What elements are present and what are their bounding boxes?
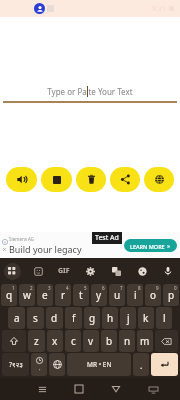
staticText: Test Ad	[95, 233, 119, 243]
staticText: 3	[48, 285, 51, 291]
staticText: 2	[30, 285, 33, 291]
staticText: t	[79, 288, 83, 302]
button[interactable]: r	[55, 284, 71, 306]
staticText: c	[71, 334, 76, 348]
button[interactable]: n	[119, 330, 135, 352]
staticText: »	[167, 242, 171, 250]
button[interactable]: Theme	[134, 263, 150, 279]
staticText: g	[89, 311, 96, 325]
button[interactable]: Back	[107, 380, 125, 398]
button[interactable]: ?१२३	[2, 353, 29, 376]
button[interactable]: Translate	[108, 263, 124, 279]
button[interactable]: u	[109, 284, 125, 306]
button[interactable]: p	[163, 284, 179, 306]
staticText: 0	[174, 285, 177, 291]
button[interactable]: q	[1, 284, 17, 306]
staticText: r	[61, 288, 66, 302]
staticText: q	[6, 288, 13, 302]
button[interactable]: j	[120, 307, 136, 329]
button[interactable]: Comma and clock	[31, 353, 47, 376]
staticText: u	[114, 288, 121, 302]
button[interactable]: Hide keyboard	[144, 380, 162, 398]
staticText: m	[140, 334, 150, 348]
staticText: j	[127, 311, 130, 325]
button[interactable]: v	[83, 330, 99, 352]
button[interactable]: Shift	[2, 330, 26, 352]
staticText: f	[72, 311, 76, 325]
button[interactable]: Settings	[82, 263, 98, 279]
staticText: s	[33, 311, 38, 325]
button[interactable]: Stickers	[30, 263, 46, 279]
button[interactable]: Change language	[49, 353, 65, 376]
staticText: LEARN MORE	[130, 243, 165, 250]
button[interactable]: t	[73, 284, 89, 306]
button[interactable]: w	[19, 284, 35, 306]
staticText: k	[143, 311, 149, 325]
staticText: 6	[102, 285, 105, 291]
staticText: y	[96, 288, 102, 302]
button[interactable]: a	[8, 307, 25, 329]
staticText: z	[34, 334, 39, 348]
button[interactable]: o	[145, 284, 161, 306]
button[interactable]: c	[65, 330, 81, 352]
button[interactable]: Language	[144, 167, 174, 192]
button[interactable]: e	[37, 284, 53, 306]
button[interactable]: Home	[70, 380, 88, 398]
staticText: h	[107, 311, 114, 325]
staticText: o	[150, 288, 157, 302]
staticText: ,	[39, 364, 41, 372]
staticText: 1	[12, 285, 15, 291]
button[interactable]: b	[101, 330, 117, 352]
staticText: ?१२३	[9, 360, 23, 370]
button[interactable]: Type or Pa	[0, 83, 180, 99]
staticText: x	[52, 334, 58, 348]
staticText: te Your Text	[88, 86, 133, 97]
button[interactable]: Speak	[6, 167, 37, 192]
button[interactable]: GIF	[55, 262, 73, 280]
staticText: MR • EN	[87, 360, 112, 369]
button[interactable]: x	[47, 330, 63, 352]
button[interactable]: Apps	[4, 263, 21, 280]
staticText: n	[124, 334, 131, 348]
button[interactable]: .	[133, 353, 149, 376]
button[interactable]: Delete	[76, 167, 106, 192]
staticText: a	[14, 311, 20, 325]
button[interactable]: f	[65, 307, 82, 329]
staticText: 9	[156, 285, 159, 291]
staticText: i	[134, 288, 137, 302]
button[interactable]: s	[27, 307, 44, 329]
button[interactable]: d	[46, 307, 63, 329]
staticText: Type or Pa	[47, 86, 87, 97]
staticText: .	[140, 359, 143, 371]
button[interactable]: g	[84, 307, 100, 329]
staticText: l	[163, 311, 166, 325]
button[interactable]: Stop	[41, 167, 72, 192]
staticText: v	[88, 334, 94, 348]
staticText: 8	[138, 285, 141, 291]
staticText: e	[42, 288, 48, 302]
staticText: 7	[120, 285, 123, 291]
button[interactable]: Backspace	[155, 330, 178, 352]
button[interactable]: m	[137, 330, 153, 352]
staticText: w	[23, 288, 31, 302]
button[interactable]: MR • EN	[67, 353, 131, 376]
staticText: 9:31	[152, 4, 166, 14]
button[interactable]: l	[156, 307, 172, 329]
button[interactable]: y	[91, 284, 107, 306]
button[interactable]: Recents	[33, 380, 51, 398]
button[interactable]: h	[102, 307, 118, 329]
staticText: p	[168, 288, 175, 302]
button[interactable]: z	[28, 330, 45, 352]
button[interactable]: LEARN MORE	[124, 239, 177, 252]
staticText: 4	[66, 285, 69, 291]
button[interactable]: i	[127, 284, 143, 306]
button[interactable]: Share	[110, 167, 140, 192]
staticText: 5	[84, 285, 87, 291]
button[interactable]: k	[138, 307, 154, 329]
staticText: Siemens AG	[9, 236, 35, 242]
button[interactable]: Enter	[151, 353, 178, 376]
staticText: d	[51, 311, 58, 325]
button[interactable]: Voice input	[160, 263, 176, 279]
staticText: GIF	[58, 266, 70, 276]
